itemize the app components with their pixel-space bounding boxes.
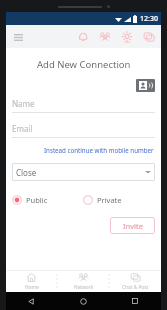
button[interactable]: Chat & Post — [110, 271, 161, 292]
staticText: Home — [25, 284, 39, 291]
button[interactable]: Public — [12, 193, 83, 207]
button[interactable]: Notifications — [75, 29, 91, 45]
button[interactable]: Messages — [141, 29, 157, 45]
staticText: Chat & Post — [122, 284, 149, 291]
button[interactable]: Network — [58, 271, 109, 292]
button[interactable]: Highlights — [119, 29, 135, 45]
button[interactable]: Email — [12, 123, 155, 138]
staticText: Close — [16, 167, 37, 178]
button[interactable]: Recent apps — [109, 292, 161, 310]
staticText: 12:30 — [140, 14, 158, 24]
button[interactable]: Private — [83, 193, 155, 207]
button[interactable]: Name — [12, 98, 155, 113]
button[interactable]: Home — [57, 292, 109, 310]
button[interactable]: Close — [12, 163, 155, 181]
button[interactable]: Pick from contacts — [136, 79, 155, 92]
staticText: Public — [26, 195, 48, 205]
button[interactable]: Back — [6, 292, 57, 310]
staticText: Instead continue with mobile number — [44, 146, 154, 154]
staticText: Email — [12, 123, 33, 134]
button[interactable]: Home — [6, 271, 57, 292]
button[interactable]: Invite — [110, 217, 155, 234]
button[interactable]: Network — [97, 29, 113, 45]
staticText: Network — [74, 284, 94, 291]
button[interactable]: Menu — [11, 30, 25, 44]
button[interactable]: Instead continue with mobile number — [43, 145, 155, 155]
staticText: Invite — [123, 221, 143, 231]
staticText: Private — [97, 195, 122, 205]
staticText: Add New Connection — [37, 58, 131, 71]
staticText: Name — [12, 98, 35, 109]
